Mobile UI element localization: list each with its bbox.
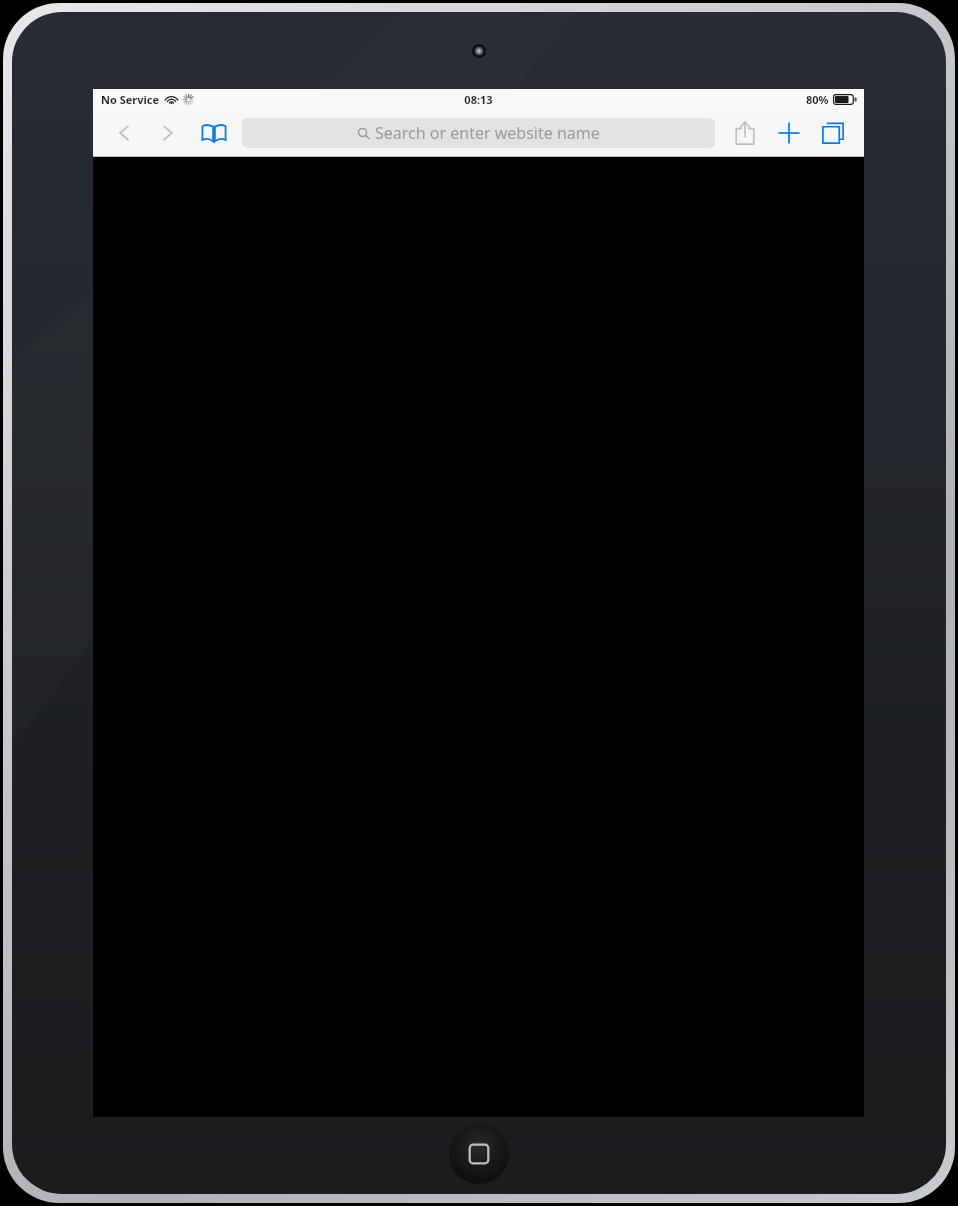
staticText: No Service: [101, 92, 160, 107]
button[interactable]: Bookmarks: [192, 111, 236, 155]
button[interactable]: New Tab: [767, 111, 811, 155]
button[interactable]: Share: [723, 111, 767, 155]
staticText: Search or enter website name: [375, 122, 600, 144]
button[interactable]: Forward: [146, 111, 190, 155]
button[interactable]: Show Tabs: [811, 111, 855, 155]
button[interactable]: Search or enter website name: [242, 118, 715, 148]
staticText: 80%: [806, 92, 829, 107]
button[interactable]: Home: [449, 1124, 509, 1184]
staticText: 08:13: [464, 92, 493, 107]
button[interactable]: Back: [102, 111, 146, 155]
